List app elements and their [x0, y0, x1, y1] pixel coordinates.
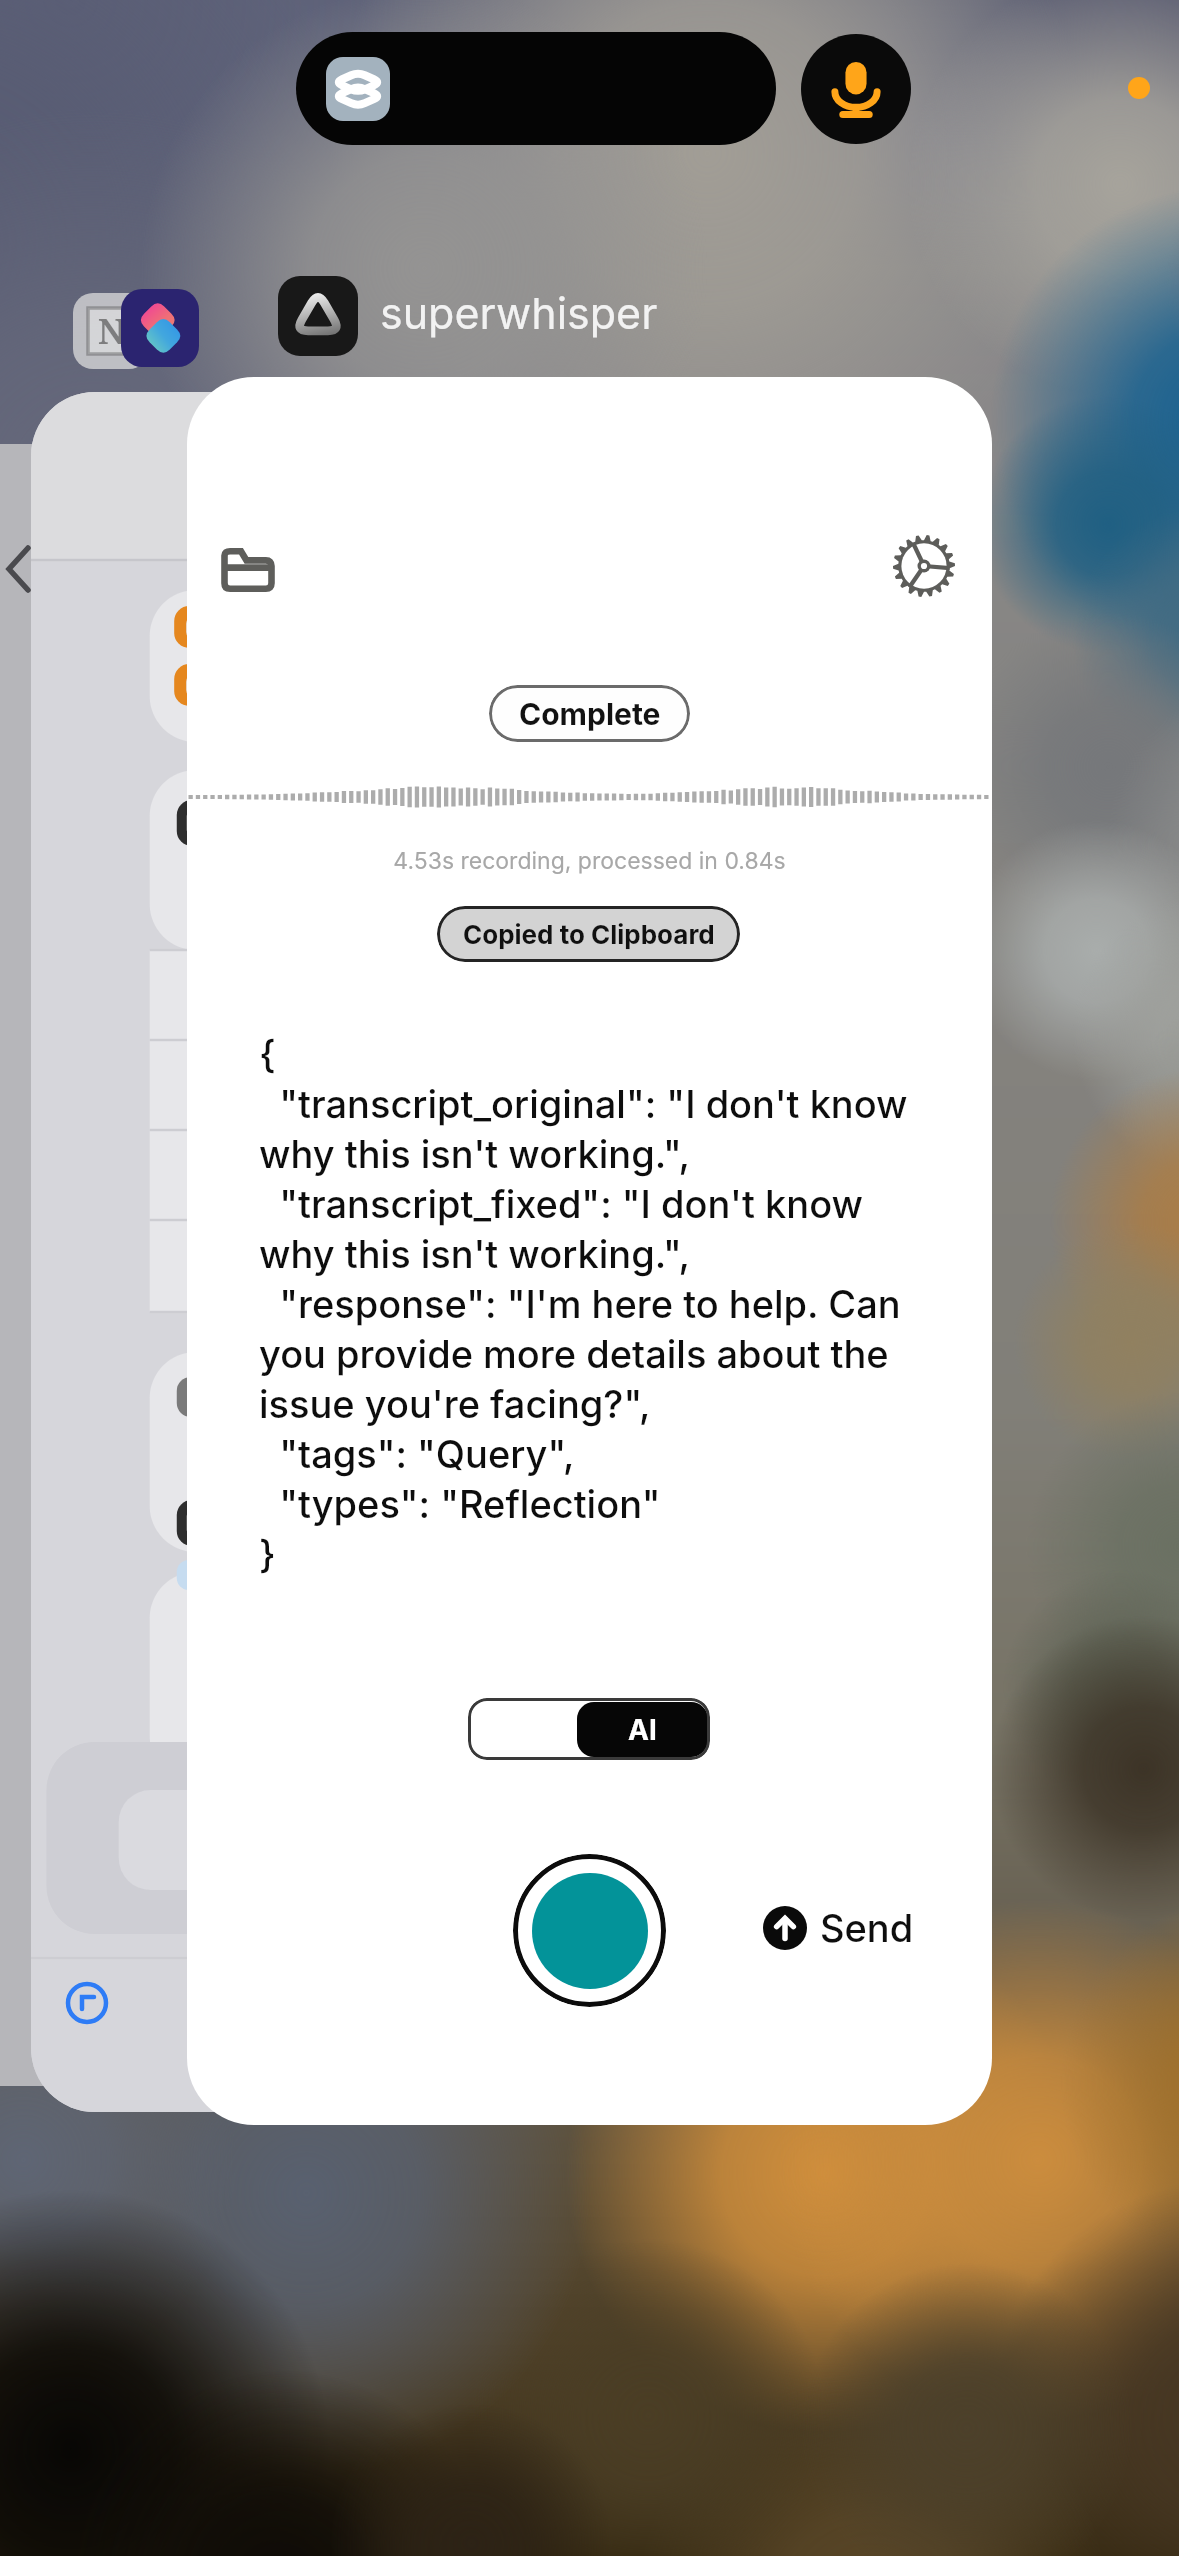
button[interactable]: Folder	[214, 536, 282, 604]
button[interactable]: Send	[763, 1905, 914, 1951]
staticText: Complete	[519, 696, 661, 732]
button[interactable]: AI	[468, 1698, 710, 1760]
button[interactable]: Notion app icon	[73, 293, 149, 369]
button[interactable]: Shortcuts app icon	[121, 289, 199, 367]
button[interactable]: superwhisper live activity	[296, 32, 776, 145]
staticText: Copied to Clipboard	[463, 919, 715, 950]
button[interactable]: superwhisper app icon	[278, 276, 358, 356]
staticText: AI	[628, 1713, 657, 1747]
button[interactable]: superwhisper	[380, 287, 658, 339]
staticText: 4.53s recording, processed in 0.84s	[187, 847, 992, 875]
button[interactable]: Recording indicator	[1128, 77, 1150, 99]
staticText: N	[98, 308, 125, 354]
button[interactable]: Microphone	[801, 34, 911, 144]
button[interactable]: Settings	[893, 535, 955, 597]
button[interactable]: Copied to Clipboard	[437, 906, 740, 962]
button[interactable]: Record	[513, 1854, 666, 2007]
staticText: { "transcript_original": "I don't know w…	[259, 1031, 929, 1577]
staticText: Send	[820, 1905, 914, 1951]
button[interactable]: Complete	[489, 685, 690, 742]
